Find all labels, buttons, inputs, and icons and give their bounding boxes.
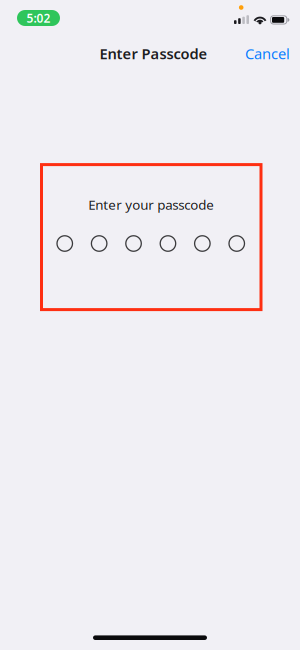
staticText: Cancel — [245, 43, 290, 63]
staticText: Enter Passcode — [99, 43, 207, 63]
staticText: Enter your passcode — [88, 196, 214, 214]
button[interactable]: Cancel — [235, 31, 300, 72]
button[interactable]: Enter your passcode — [41, 165, 261, 310]
staticText: 5:02 — [26, 10, 50, 26]
